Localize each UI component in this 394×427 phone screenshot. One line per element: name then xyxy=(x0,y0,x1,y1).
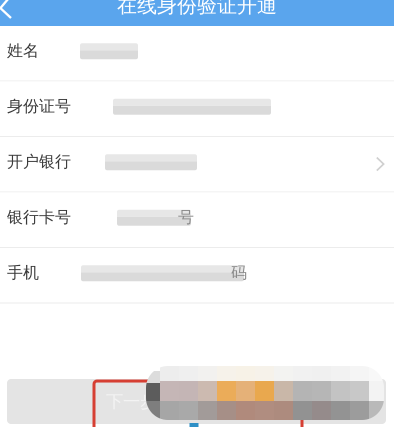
staticText: 银行卡号 xyxy=(7,207,71,227)
staticText: 身份证号 xyxy=(7,96,71,116)
button[interactable]: Back xyxy=(0,0,38,26)
staticText: 号 xyxy=(178,207,194,227)
button[interactable]: 下一步 xyxy=(7,379,386,424)
staticText: 姓名 xyxy=(7,41,39,61)
staticText: 下一步 xyxy=(106,391,157,412)
staticText: 手机 xyxy=(7,263,39,283)
button[interactable]: 开户银行 xyxy=(0,137,394,191)
staticText: 码 xyxy=(231,263,247,283)
staticText: 开户银行 xyxy=(7,152,71,172)
staticText: 在线身份验证开通 xyxy=(117,0,277,18)
